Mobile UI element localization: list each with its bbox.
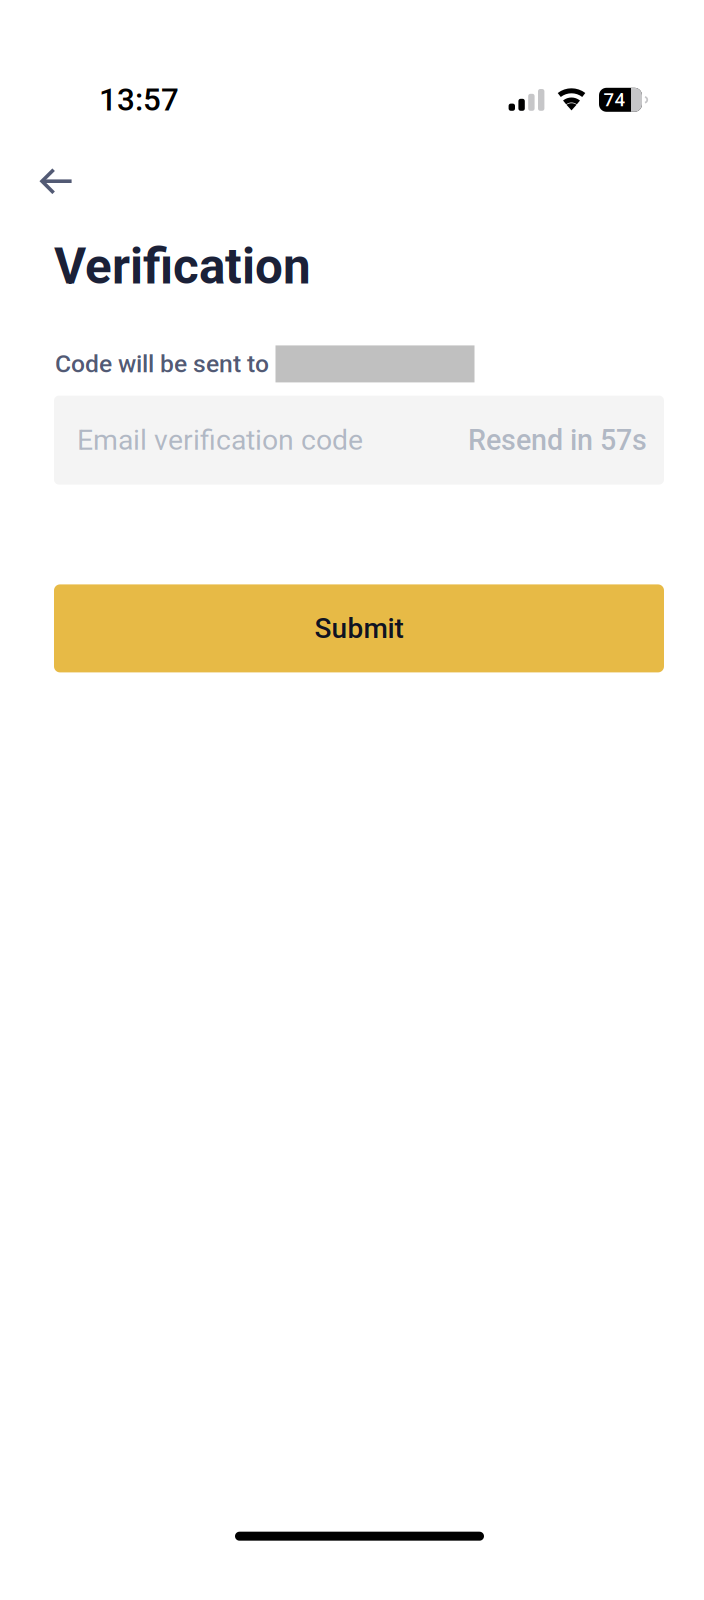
staticText: Code will be sent to	[55, 349, 269, 378]
button[interactable]: Back	[28, 160, 84, 203]
staticText: Resend in 57s	[468, 423, 647, 457]
staticText: Submit	[314, 612, 403, 645]
staticText: 13:57	[99, 81, 179, 118]
staticText: Verification	[54, 238, 311, 296]
staticText: 74	[603, 89, 625, 111]
staticText: Email verification code	[77, 423, 363, 457]
button[interactable]: Submit	[54, 584, 664, 672]
